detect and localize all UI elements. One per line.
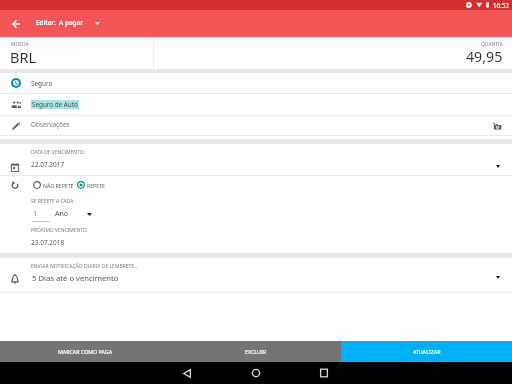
button[interactable]: Observações xyxy=(0,116,512,135)
button[interactable]: Home xyxy=(245,362,267,384)
staticText: EXCLUIR xyxy=(245,348,266,355)
staticText: NÃO REPETE xyxy=(43,182,74,189)
button[interactable]: Ano xyxy=(55,209,69,219)
button[interactable]: Seguro de Auto xyxy=(0,94,512,115)
staticText: MOEDA xyxy=(11,41,29,48)
staticText: 16:52 xyxy=(493,1,509,9)
staticText: MARCAR COMO PAGA xyxy=(58,348,113,355)
staticText: SE REPETE A CADA xyxy=(31,198,74,205)
button[interactable]: Back xyxy=(2,10,29,37)
button[interactable]: 1 xyxy=(31,209,49,222)
staticText: Editar: A pagar xyxy=(36,18,83,27)
staticText: ENVIAR NOTIFICAÇÃO DIÁRIA DE LEMBRETE… xyxy=(31,263,139,270)
button[interactable]: NÃO REPETE xyxy=(33,181,74,189)
button[interactable]: DATA DE VENCIMENTO: xyxy=(0,144,512,175)
staticText: 23.07.2018 xyxy=(31,238,65,247)
staticText: 1 xyxy=(33,209,38,219)
button[interactable]: Add photo xyxy=(490,119,504,133)
button[interactable]: ENVIAR NOTIFICAÇÃO DIÁRIA DE LEMBRETE… xyxy=(0,258,512,292)
staticText: BRL xyxy=(10,47,37,67)
button[interactable]: QUANTIA xyxy=(154,37,512,69)
button[interactable]: EXCLUIR xyxy=(170,341,341,362)
staticText: ATUALIZAR xyxy=(413,348,441,355)
button[interactable]: Editar: A pagar xyxy=(36,18,100,27)
staticText: QUANTIA xyxy=(481,41,503,48)
button[interactable]: Back xyxy=(176,362,198,384)
staticText: REPETE xyxy=(87,182,105,189)
staticText: 22.07.2017 xyxy=(31,160,65,169)
button[interactable]: Recents xyxy=(313,362,335,384)
button[interactable]: Seguro xyxy=(0,73,512,93)
staticText: PRÓXIMO VENCIMENTO xyxy=(31,227,87,234)
button[interactable]: MOEDA xyxy=(0,37,153,69)
staticText: Observações xyxy=(31,120,70,129)
staticText: DATA DE VENCIMENTO: xyxy=(31,149,85,156)
button[interactable]: REPETE xyxy=(77,181,105,189)
staticText: 5 Dias até o vencimento xyxy=(32,273,119,283)
staticText: Seguro de Auto xyxy=(32,100,78,109)
staticText: Seguro xyxy=(31,79,53,88)
staticText: Ano xyxy=(55,209,69,219)
staticText: 49,95 xyxy=(466,47,503,66)
button[interactable]: ATUALIZAR xyxy=(341,341,512,362)
button[interactable]: MARCAR COMO PAGA xyxy=(0,341,170,362)
